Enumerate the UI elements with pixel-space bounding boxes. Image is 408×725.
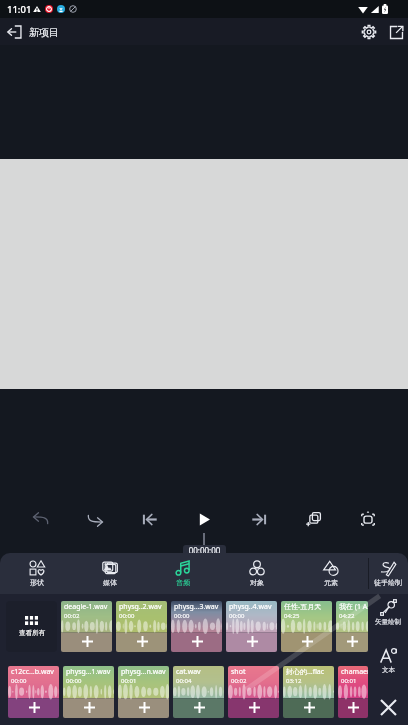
button[interactable]: Add 封心的...flac [302,700,316,714]
staticText: 形状 [30,578,44,587]
staticText: 00:00 [11,677,27,685]
button[interactable]: Add chamaer [346,700,360,714]
staticText: deagle-1.wav [64,602,108,612]
staticText: 任性-五月天 [284,602,322,612]
staticText: 音频 [176,578,190,587]
staticText: 徒手绘制 [374,578,402,587]
button[interactable]: deagle-1.wav [61,601,112,652]
button[interactable]: c12cc...b.wav [8,666,59,718]
staticText: 03:12 [286,677,302,685]
button[interactable]: Settings [357,20,381,44]
staticText: 00:00 [229,612,245,620]
button[interactable]: 元素 [294,553,368,594]
button[interactable]: Skip to end [244,504,274,534]
staticText: 00:01 [121,677,137,685]
staticText: physg..2.wav [119,602,162,612]
staticText: physg...n.wav [121,667,166,677]
staticText: 对象 [250,578,264,587]
staticText: 00:02 [64,612,80,620]
staticText: 矢量绘制 [375,618,401,626]
staticText: c12cc...b.wav [11,667,54,677]
button[interactable]: physg...1.wav [63,666,114,718]
staticText: 00:00 [174,612,190,620]
button[interactable]: Close [373,692,403,722]
button[interactable]: Add cat.wav [192,700,206,714]
staticText: physg...1.wav [66,667,111,677]
button[interactable]: Add physg...3.wav [190,634,204,648]
staticText: 封心的...flac [286,667,325,677]
button[interactable]: Add 我在 (1 A... [345,634,359,648]
button[interactable]: 音频 [146,553,220,594]
button[interactable]: Add physg..4.wav [245,634,259,648]
button[interactable]: 矢量绘制 [371,597,405,628]
staticText: 新项目 [29,26,59,39]
button[interactable]: 形状 [0,553,73,594]
staticText: 00:04 [176,677,192,685]
button[interactable]: Add shot [247,700,261,714]
button[interactable]: chamaer [338,666,368,718]
button[interactable]: Back [2,20,26,44]
button[interactable]: Add physg...n.wav [137,700,151,714]
staticText: 04:22 [339,612,355,620]
staticText: 元素 [324,578,338,587]
button[interactable]: Add layer [299,504,329,534]
button[interactable]: Undo [25,504,55,534]
button[interactable]: Add c12cc...b.wav [27,700,41,714]
staticText: 00:02 [231,677,247,685]
button[interactable]: physg...n.wav [118,666,169,718]
staticText: 我在 (1 A... [339,602,368,612]
staticText: 文本 [382,666,395,674]
button[interactable]: Play [189,504,219,534]
button[interactable]: 徒手绘制 [368,553,408,594]
button[interactable]: cat.wav [173,666,224,718]
button[interactable]: Add deagle-1.wav [80,634,94,648]
button[interactable]: 文本 [376,645,401,676]
staticText: 11:01 [7,3,32,16]
staticText: 00:00:00 [184,545,225,556]
button[interactable]: 任性-五月天 [281,601,332,652]
button[interactable]: 查看所有 [6,601,57,652]
button[interactable]: shot [228,666,279,718]
staticText: shot [231,667,246,677]
staticText: cat.wav [176,667,201,677]
staticText: 04:25 [284,612,300,620]
staticText: chamaer [341,667,368,677]
button[interactable]: Add physg..2.wav [135,634,149,648]
staticText: physg..4.wav [229,602,272,612]
staticText: 00:01 [341,677,357,685]
button[interactable]: 对象 [220,553,294,594]
staticText: 00:00 [66,677,82,685]
button[interactable]: physg..2.wav [116,601,167,652]
button[interactable]: 我在 (1 A... [336,601,368,652]
staticText: 媒体 [103,578,117,587]
button[interactable]: Export [384,20,408,44]
button[interactable]: Fit to screen [353,504,383,534]
staticText: 00:00 [119,612,135,620]
button[interactable]: physg...3.wav [171,601,222,652]
button[interactable]: Add physg...1.wav [82,700,96,714]
staticText: 查看所有 [19,629,45,637]
button[interactable]: Add 任性-五月天 [300,634,314,648]
button[interactable]: Skip to start [134,504,164,534]
button[interactable]: 媒体 [73,553,146,594]
button[interactable]: 封心的...flac [283,666,334,718]
staticText: physg...3.wav [174,602,219,612]
button[interactable]: Redo [80,504,110,534]
button[interactable]: physg..4.wav [226,601,277,652]
